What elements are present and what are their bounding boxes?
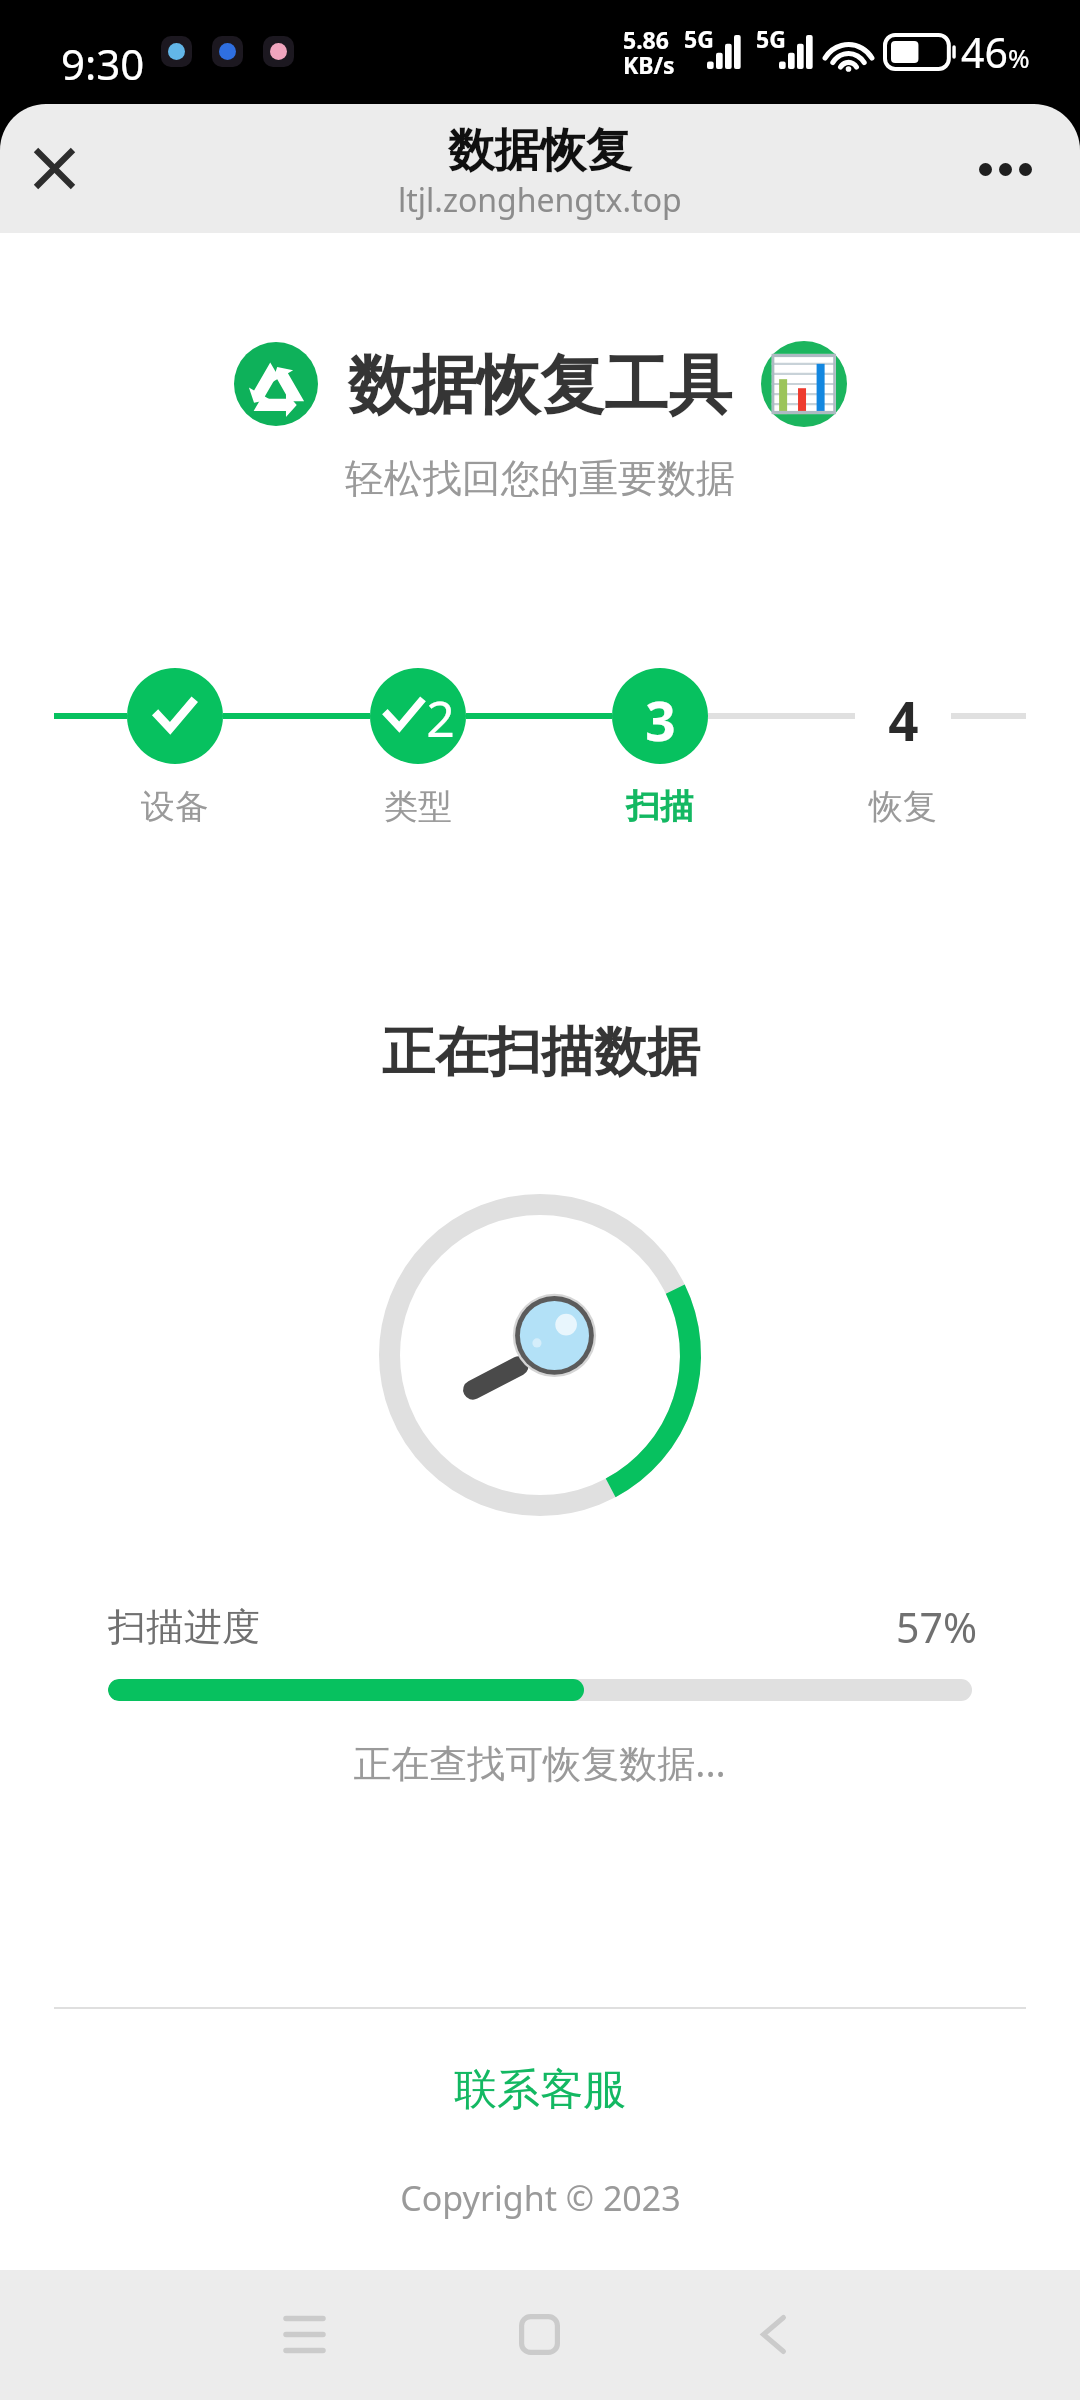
staticText: 5.86 KB/s — [623, 24, 675, 80]
staticText: Copyright © 2023 — [400, 2175, 681, 2221]
staticText: % — [1008, 40, 1030, 75]
staticText: 正在查找可恢复数据... — [353, 1736, 726, 1788]
button[interactable]: Close — [11, 125, 98, 212]
staticText: 类型 — [384, 785, 452, 828]
staticText: 联系客服 — [454, 2063, 626, 2117]
staticText: 数据恢复 — [448, 122, 632, 180]
staticText: 轻松找回您的重要数据 — [345, 454, 735, 503]
button[interactable]: Back — [713, 2274, 833, 2394]
staticText: 扫描进度 — [108, 1603, 260, 1651]
staticText: 扫描 — [626, 785, 694, 828]
staticText: 9:30 — [61, 35, 145, 92]
staticText: 5G — [756, 23, 786, 54]
staticText: 2 — [426, 684, 455, 752]
button[interactable]: Home — [479, 2274, 599, 2394]
staticText: 数据恢复工具 — [348, 345, 732, 426]
button[interactable]: Recents — [244, 2274, 364, 2394]
button[interactable]: 联系客服 — [390, 2048, 690, 2132]
staticText: 5G — [684, 23, 714, 54]
staticText: 4 — [888, 684, 919, 756]
staticText: ltjl.zonghengtx.top — [398, 178, 682, 222]
staticText: 57% — [896, 1599, 977, 1655]
button[interactable]: More options — [952, 121, 1051, 220]
staticText: 46 — [961, 24, 1008, 80]
staticText: 设备 — [141, 785, 209, 828]
staticText: 3 — [645, 684, 676, 756]
staticText: 正在扫描数据 — [382, 1019, 700, 1086]
staticText: 恢复 — [869, 785, 937, 828]
